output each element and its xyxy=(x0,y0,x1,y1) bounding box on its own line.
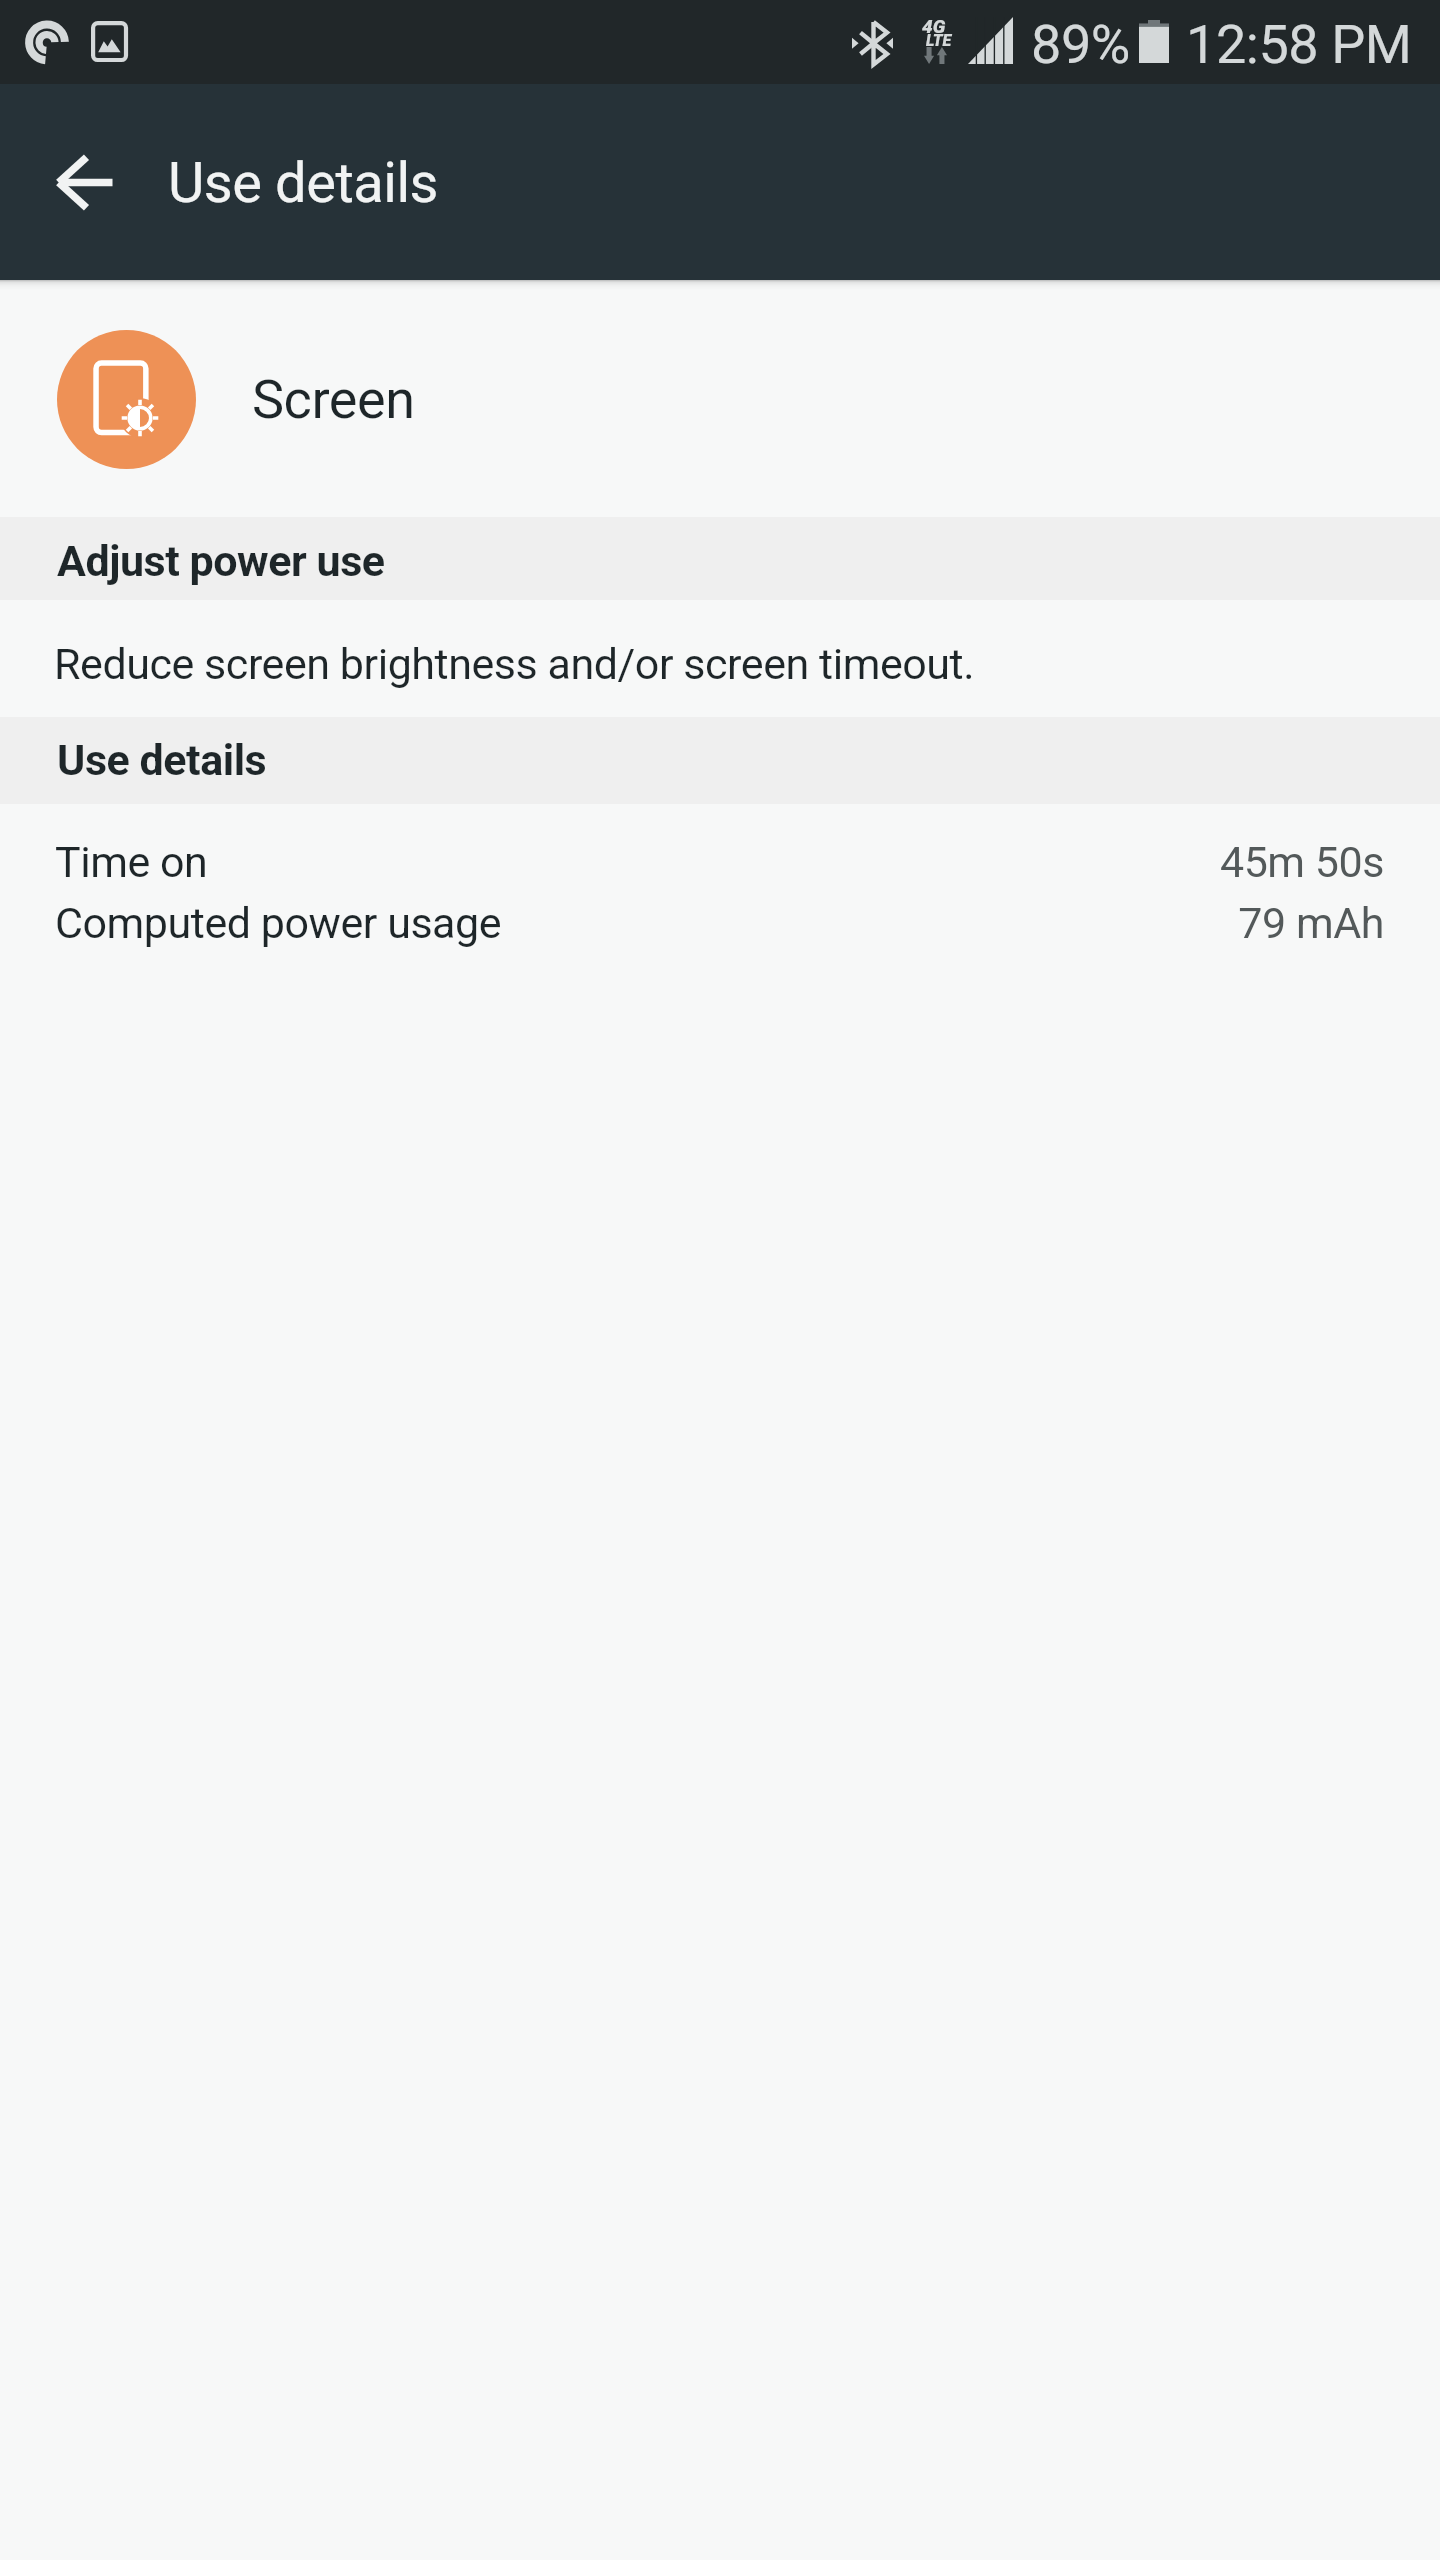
staticText: 4G xyxy=(922,15,946,37)
staticText: LTE xyxy=(926,31,952,50)
staticText: 45m 50s xyxy=(216,837,1384,887)
staticText: Reduce screen brightness and/or screen t… xyxy=(54,639,975,689)
staticText: Screen xyxy=(252,368,415,431)
staticText: 79 mAh xyxy=(510,898,1384,948)
button[interactable]: Screen xyxy=(0,290,1440,509)
button[interactable]: Reduce screen brightness and/or screen t… xyxy=(0,600,1440,717)
staticText: 89% xyxy=(1031,13,1130,76)
button[interactable]: Time on xyxy=(0,831,1440,892)
staticText: Adjust power use xyxy=(57,536,385,586)
staticText: Use details xyxy=(168,150,439,216)
staticText: 12:58 PM xyxy=(1186,13,1412,76)
staticText: Use details xyxy=(57,735,267,785)
staticText: Computed power usage xyxy=(55,898,502,948)
button[interactable]: Navigate up xyxy=(30,128,138,236)
button[interactable]: Computed power usage xyxy=(0,892,1440,953)
staticText: Time on xyxy=(55,837,208,887)
